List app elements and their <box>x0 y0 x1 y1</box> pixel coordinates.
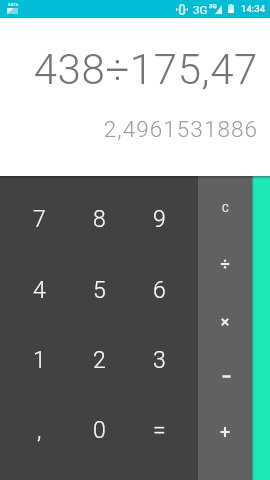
staticText: 3 <box>153 347 166 374</box>
button[interactable]: 3 <box>129 325 189 395</box>
staticText: 7 <box>33 206 46 233</box>
staticText: 5 <box>93 277 106 304</box>
button[interactable]: 8 <box>69 184 129 255</box>
staticText: 14:34 <box>241 3 266 14</box>
button[interactable]: 1 <box>9 325 69 395</box>
staticText: 3G <box>209 2 217 9</box>
staticText: 0 <box>93 417 106 444</box>
staticText: DATA <box>8 3 19 7</box>
button[interactable]: 0 <box>69 395 129 465</box>
button[interactable]: Minus <box>198 348 252 404</box>
button[interactable]: Plus <box>198 404 252 460</box>
button[interactable]: Scientific panel <box>252 176 270 480</box>
button[interactable]: 7 <box>9 184 69 255</box>
button[interactable]: Clear <box>198 180 252 236</box>
staticText: 9 <box>153 206 166 233</box>
button[interactable]: Divide <box>198 236 252 292</box>
staticText: C <box>222 202 229 214</box>
staticText: 2 <box>93 347 106 374</box>
button[interactable]: = <box>129 395 189 465</box>
staticText: 8 <box>93 206 106 233</box>
staticText: 4 <box>33 277 46 304</box>
staticText: = <box>153 417 166 444</box>
button[interactable]: 5 <box>69 255 129 325</box>
button[interactable]: 9 <box>129 184 189 255</box>
staticText: , <box>37 417 42 444</box>
staticText: 438÷175,47 <box>33 45 258 94</box>
button[interactable]: 6 <box>129 255 189 325</box>
button[interactable]: , <box>9 395 69 465</box>
button[interactable]: 4 <box>9 255 69 325</box>
staticText: 1 <box>33 347 46 374</box>
staticText: 2,4961531886 <box>103 116 258 142</box>
staticText: 6 <box>153 277 166 304</box>
button[interactable]: 2 <box>69 325 129 395</box>
button[interactable]: Multiply <box>198 292 252 348</box>
staticText: 3G <box>193 3 208 16</box>
